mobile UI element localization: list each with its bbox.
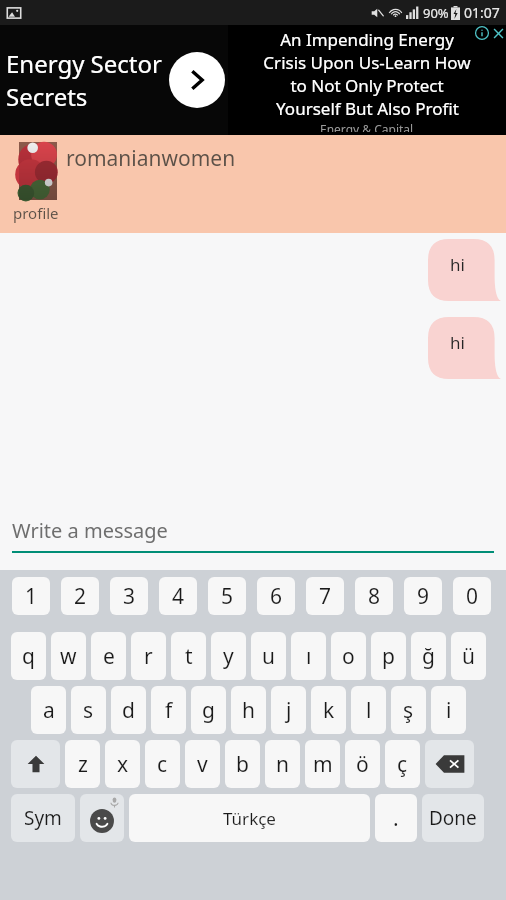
staticText: 01:07 [464, 3, 500, 22]
button[interactable]: ı [291, 632, 326, 680]
staticText: Done [429, 805, 477, 831]
staticText: z [78, 750, 88, 779]
button[interactable]: e [91, 632, 126, 680]
button[interactable]: ü [451, 632, 486, 680]
staticText: s [83, 696, 94, 725]
button[interactable]: ç [385, 740, 420, 788]
button[interactable]: q [11, 632, 46, 680]
button[interactable]: Shift [11, 740, 60, 788]
staticText: a [43, 696, 55, 725]
button[interactable]: ö [345, 740, 380, 788]
button[interactable]: romanianwomen [0, 135, 506, 233]
staticText: ğ [422, 642, 435, 671]
button[interactable]: 9 [404, 577, 442, 615]
button[interactable]: 7 [306, 577, 344, 615]
staticText: romanianwomen [66, 144, 236, 173]
button[interactable]: ğ [411, 632, 446, 680]
button[interactable]: hi [428, 239, 502, 301]
staticText: ö [356, 750, 369, 779]
button[interactable]: r [131, 632, 166, 680]
button[interactable]: Done [422, 794, 484, 842]
button[interactable]: a [31, 686, 66, 734]
button[interactable]: i [431, 686, 466, 734]
button[interactable]: h [231, 686, 266, 734]
button[interactable]: 3 [110, 577, 148, 615]
staticText: Türkçe [223, 807, 276, 830]
staticText: to Not Only Protect [290, 74, 444, 97]
staticText: w [60, 642, 77, 671]
staticText: f [165, 696, 173, 725]
staticText: Crisis Upon Us-Learn How [263, 51, 471, 74]
button[interactable]: 1 [12, 577, 50, 615]
button[interactable]: Write a message [0, 498, 506, 570]
button[interactable]: l [351, 686, 386, 734]
staticText: q [22, 642, 35, 671]
staticText: ı [306, 642, 312, 671]
button[interactable]: b [225, 740, 260, 788]
button[interactable]: Backspace [425, 740, 474, 788]
staticText: Write a message [12, 517, 168, 544]
staticText: c [157, 750, 168, 779]
button[interactable]: w [51, 632, 86, 680]
button[interactable]: z [65, 740, 100, 788]
button[interactable]: 0 [453, 577, 491, 615]
button[interactable]: Energy Sector [0, 25, 506, 135]
button[interactable]: 4 [159, 577, 197, 615]
button[interactable]: Ad info [474, 25, 490, 41]
staticText: y [223, 642, 234, 671]
staticText: h [242, 696, 255, 725]
staticText: l [366, 696, 372, 725]
button[interactable]: Open advertisement [169, 52, 225, 108]
button[interactable]: f [151, 686, 186, 734]
button[interactable]: o [331, 632, 366, 680]
button[interactable]: d [111, 686, 146, 734]
staticText: 9 [417, 582, 430, 611]
button[interactable]: 2 [61, 577, 99, 615]
staticText: . [393, 804, 399, 833]
staticText: Energy Sector [6, 47, 162, 80]
staticText: Yourself But Also Profit [276, 97, 459, 120]
button[interactable]: j [271, 686, 306, 734]
button[interactable]: 8 [355, 577, 393, 615]
staticText: 1 [25, 582, 38, 611]
button[interactable]: hi [428, 317, 502, 379]
button[interactable]: m [305, 740, 340, 788]
button[interactable]: s [71, 686, 106, 734]
button[interactable]: 5 [208, 577, 246, 615]
button[interactable]: t [171, 632, 206, 680]
button[interactable]: Space [129, 794, 370, 842]
staticText: 0 [466, 582, 479, 611]
staticText: 3 [123, 582, 136, 611]
staticText: 2 [74, 582, 87, 611]
button[interactable]: v [185, 740, 220, 788]
staticText: Energy & Capital [320, 121, 414, 132]
staticText: Sym [24, 805, 62, 831]
button[interactable]: Emoji keyboard [80, 794, 124, 842]
staticText: g [202, 696, 215, 725]
staticText: p [382, 642, 395, 671]
staticText: ş [403, 696, 414, 725]
button[interactable]: g [191, 686, 226, 734]
button[interactable]: p [371, 632, 406, 680]
button[interactable]: Close ad [490, 25, 506, 41]
staticText: hi [450, 253, 465, 276]
staticText: b [236, 750, 249, 779]
button[interactable]: u [251, 632, 286, 680]
button[interactable]: ş [391, 686, 426, 734]
button[interactable]: n [265, 740, 300, 788]
staticText: 8 [368, 582, 381, 611]
staticText: v [197, 750, 208, 779]
button[interactable]: . [375, 794, 417, 842]
button[interactable]: y [211, 632, 246, 680]
staticText: o [342, 642, 355, 671]
staticText: profile [13, 203, 59, 223]
button[interactable]: c [145, 740, 180, 788]
button[interactable]: 6 [257, 577, 295, 615]
staticText: u [262, 642, 275, 671]
staticText: Secrets [6, 80, 88, 113]
staticText: k [323, 696, 335, 725]
staticText: 4 [172, 582, 185, 611]
button[interactable]: x [105, 740, 140, 788]
button[interactable]: k [311, 686, 346, 734]
button[interactable]: Sym [11, 794, 75, 842]
